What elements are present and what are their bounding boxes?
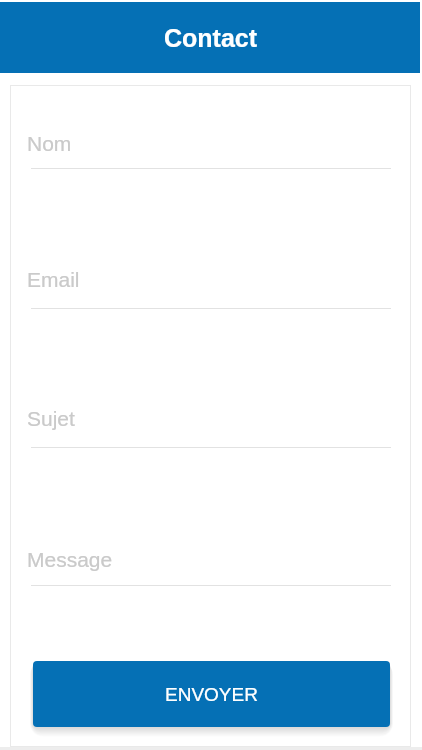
staticText: Email (27, 268, 80, 291)
button[interactable]: Message (27, 548, 391, 585)
staticText: Contact (164, 24, 258, 52)
staticText: ENVOYER (165, 684, 258, 705)
staticText: Sujet (27, 407, 75, 430)
button[interactable]: Nom (27, 132, 391, 169)
button[interactable]: ENVOYER (33, 661, 390, 727)
button[interactable]: Email (27, 268, 391, 305)
staticText: Nom (27, 132, 72, 155)
staticText: Message (27, 548, 113, 571)
button[interactable]: Sujet (27, 407, 391, 444)
